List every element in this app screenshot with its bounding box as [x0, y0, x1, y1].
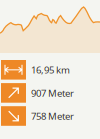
button[interactable]: 907 Meter — [1, 83, 100, 103]
staticText: 907 Meter — [31, 86, 74, 99]
staticText: 758 Meter — [31, 109, 74, 123]
button[interactable]: 758 Meter — [1, 106, 100, 126]
staticText: 16,95 km — [31, 63, 70, 76]
button[interactable]: 16,95 km — [1, 60, 100, 80]
